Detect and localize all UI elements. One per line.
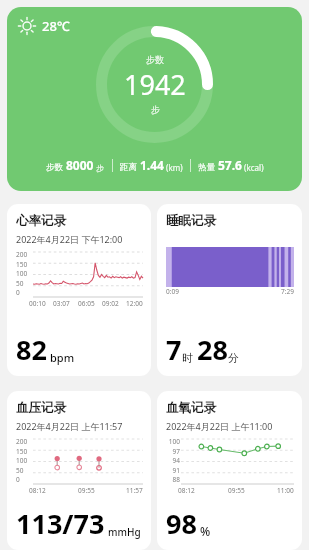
staticText: (km): [164, 162, 183, 173]
staticText: 100: [16, 456, 32, 465]
staticText: 1.44: [140, 157, 164, 173]
staticText: 00:10: [29, 299, 46, 308]
button[interactable]: 血压记录: [7, 391, 151, 550]
staticText: 91: [166, 466, 180, 475]
staticText: 步数: [46, 161, 66, 173]
staticText: 03:07: [53, 299, 70, 308]
other: Sunny: [17, 16, 37, 36]
staticText: mmHg: [108, 525, 141, 539]
staticText: 09:55: [228, 486, 245, 495]
staticText: 88: [166, 475, 180, 484]
staticText: 200: [16, 250, 32, 259]
staticText: 距离: [120, 161, 140, 173]
staticText: 98: [166, 505, 197, 542]
staticText: 100: [166, 437, 180, 446]
staticText: (kcal): [242, 162, 264, 173]
staticText: 7:29: [281, 287, 294, 296]
staticText: 09:55: [78, 486, 95, 495]
button[interactable]: 睡眠记录: [157, 204, 302, 376]
staticText: 28℃: [42, 17, 70, 35]
staticText: 08:12: [178, 486, 195, 495]
staticText: 2022年4月22日 下午12:00: [16, 233, 123, 245]
staticText: 57.6: [218, 157, 242, 173]
staticText: 150: [16, 447, 32, 456]
staticText: 8000: [66, 157, 94, 173]
button[interactable]: 心率记录: [7, 204, 151, 376]
staticText: 7: [166, 331, 182, 368]
staticText: 0:09: [166, 287, 179, 296]
staticText: 100: [16, 269, 32, 278]
staticText: 200: [16, 437, 32, 446]
staticText: 06:05: [78, 299, 95, 308]
staticText: 82: [16, 331, 47, 368]
staticText: 2022年4月22日 上午11:00: [166, 420, 273, 432]
staticText: 0: [16, 475, 32, 484]
staticText: 分: [228, 351, 239, 365]
staticText: 09:02: [102, 299, 119, 308]
staticText: 心率记录: [16, 213, 66, 229]
staticText: 2022年4月22日 上午11:57: [16, 420, 123, 432]
staticText: 12:00: [126, 299, 143, 308]
staticText: %: [200, 523, 211, 539]
staticText: 步数: [146, 54, 164, 65]
staticText: 97: [166, 447, 180, 456]
staticText: 热量: [198, 161, 218, 173]
staticText: 步: [151, 104, 160, 115]
button[interactable]: Sunny: [7, 7, 302, 191]
staticText: 步: [94, 162, 105, 173]
staticText: 50: [16, 466, 32, 475]
staticText: 113/73: [16, 505, 105, 542]
staticText: 血氧记录: [166, 400, 216, 416]
staticText: 28: [197, 331, 228, 368]
staticText: 08:12: [29, 486, 46, 495]
staticText: 时: [182, 351, 193, 365]
staticText: 94: [166, 456, 180, 465]
staticText: 11:57: [126, 486, 143, 495]
staticText: 50: [16, 279, 32, 288]
staticText: 1942: [124, 66, 186, 103]
staticText: bpm: [50, 350, 75, 365]
staticText: 150: [16, 260, 32, 269]
staticText: 0: [16, 288, 32, 297]
staticText: 11:00: [277, 486, 294, 495]
staticText: 血压记录: [16, 400, 66, 416]
staticText: 睡眠记录: [166, 213, 216, 229]
button[interactable]: 血氧记录: [157, 391, 302, 550]
